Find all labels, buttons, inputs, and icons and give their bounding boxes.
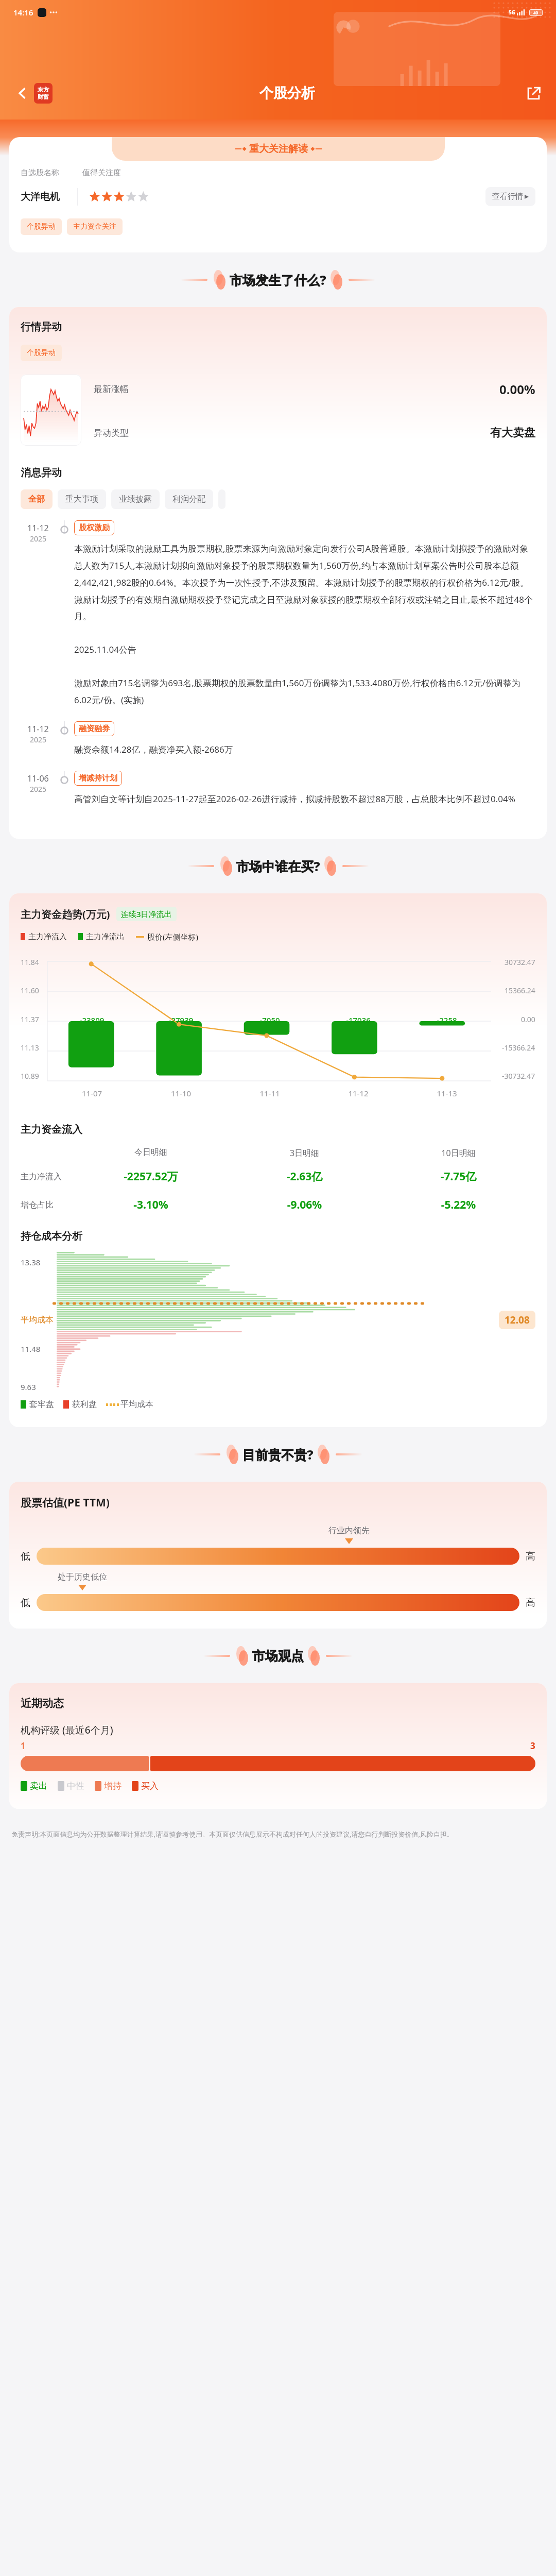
- staticText: 高管刘自文等计划自2025-11-27起至2026-02-26进行减持，拟减持股…: [74, 793, 515, 805]
- staticText: 获利盘: [72, 1399, 97, 1410]
- staticText: 市场发生了什么?: [230, 271, 326, 289]
- staticText: -2257.52万: [74, 1169, 228, 1184]
- staticText: 11-13: [403, 1088, 491, 1098]
- staticText: -7.75亿: [381, 1169, 535, 1184]
- staticText: 个股分析: [259, 84, 315, 102]
- staticText: 平均成本: [21, 1315, 54, 1325]
- staticText: 增仓占比: [21, 1200, 74, 1210]
- staticText: 平均成本: [120, 1399, 153, 1410]
- staticText: 东方: [38, 86, 49, 93]
- staticText: 重大事项: [65, 494, 98, 504]
- staticText: 大洋电机: [21, 191, 77, 203]
- staticText: 5G: [509, 9, 515, 16]
- staticText: 3: [530, 1740, 535, 1752]
- staticText: 11-07: [47, 1088, 136, 1098]
- staticText: -23809: [47, 1015, 136, 1025]
- staticText: -5.22%: [381, 1197, 535, 1212]
- staticText: 股权激励: [79, 523, 110, 533]
- button[interactable]: 个股异动: [21, 345, 62, 361]
- staticText: -2258: [403, 1015, 491, 1025]
- staticText: 30732.47: [505, 957, 535, 967]
- button[interactable]: 主力资金关注: [67, 218, 123, 235]
- button[interactable]: Back: [10, 81, 34, 105]
- staticText: 连续3日净流出: [121, 909, 172, 919]
- staticText: 主力资金流入: [21, 1123, 82, 1136]
- staticText: 40: [533, 10, 538, 15]
- staticText: 11.37: [21, 1014, 39, 1024]
- staticText: 重大关注解读: [249, 143, 308, 155]
- staticText: 13.38: [21, 1257, 41, 1267]
- staticText: 近期动态: [21, 1697, 64, 1710]
- staticText: 14:16: [13, 7, 33, 18]
- staticText: 11.84: [21, 957, 39, 967]
- staticText: 套牢盘: [29, 1399, 54, 1410]
- staticText: 融资余额14.28亿，融资净买入额-2686万: [74, 743, 233, 755]
- staticText: 处于历史低位: [58, 1572, 107, 1582]
- button[interactable]: 查看行情: [485, 187, 535, 206]
- staticText: 持仓成本分析: [21, 1230, 82, 1243]
- staticText: -30732.47: [502, 1071, 535, 1081]
- staticText: 增持: [104, 1781, 121, 1791]
- staticText: 自选股名称: [21, 168, 82, 178]
- staticText: 免责声明:本页面信息均为公开数据整理计算结果,请谨慎参考使用。本页面仅供信息展示…: [11, 1829, 454, 1839]
- staticText: -15366.24: [502, 1043, 535, 1053]
- staticText: 2025: [30, 534, 47, 544]
- staticText: -27939: [136, 1015, 225, 1025]
- staticText: 卖出: [30, 1781, 47, 1791]
- staticText: 主力净流出: [86, 932, 125, 942]
- staticText: 行情异动: [21, 320, 62, 333]
- staticText: 低: [21, 1550, 30, 1563]
- staticText: 业绩披露: [119, 494, 152, 504]
- staticText: 增减持计划: [79, 773, 117, 783]
- staticText: 值得关注度: [82, 168, 121, 178]
- staticText: 目前贵不贵?: [242, 1446, 314, 1463]
- staticText: -9.06%: [228, 1197, 381, 1212]
- staticText: 股价(左侧坐标): [147, 931, 199, 942]
- staticText: 主力净流入: [28, 932, 67, 942]
- staticText: 0.00%: [499, 381, 535, 398]
- button[interactable]: 重大事项: [58, 489, 106, 509]
- staticText: 主力资金关注: [73, 222, 116, 231]
- staticText: -2.63亿: [228, 1169, 381, 1184]
- staticText: 2025: [30, 735, 47, 744]
- button[interactable]: 利润分配: [165, 489, 213, 509]
- button[interactable]: 业绩披露: [111, 489, 160, 509]
- button[interactable]: 股权激励: [74, 520, 114, 535]
- staticText: 最新涨幅: [94, 384, 129, 395]
- staticText: 10.89: [21, 1071, 39, 1081]
- button[interactable]: Share: [522, 81, 546, 105]
- staticText: 低: [21, 1597, 30, 1609]
- staticText: 3日明细: [228, 1147, 381, 1159]
- staticText: 11.48: [21, 1344, 41, 1354]
- staticText: 15366.24: [505, 986, 535, 995]
- staticText: 0.00: [521, 1014, 535, 1024]
- staticText: 9.63: [21, 1382, 36, 1392]
- button[interactable]: 个股异动: [21, 218, 62, 235]
- staticText: 消息异动: [21, 466, 62, 479]
- staticText: 买入: [141, 1781, 159, 1791]
- button[interactable]: 全部: [21, 489, 53, 509]
- staticText: 10日明细: [381, 1147, 535, 1159]
- staticText: 11-11: [225, 1088, 314, 1098]
- staticText: 市场中谁在买?: [236, 857, 320, 875]
- staticText: 个股异动: [27, 222, 56, 231]
- staticText: 11-12: [314, 1088, 403, 1098]
- staticText: 全部: [28, 494, 45, 504]
- staticText: 本激励计划采取的激励工具为股票期权,股票来源为向激励对象定向发行公司A股普通股。…: [74, 543, 535, 706]
- button[interactable]: 融资融券: [74, 721, 114, 736]
- staticText: 11.13: [21, 1043, 39, 1053]
- staticText: 11-12: [27, 522, 49, 534]
- staticText: 1: [21, 1740, 26, 1752]
- staticText: 机构评级 (最近6个月): [21, 1723, 113, 1737]
- staticText: 股票估值(PE TTM): [21, 1495, 110, 1510]
- staticText: 个股异动: [27, 348, 56, 358]
- staticText: 查看行情: [492, 192, 523, 201]
- staticText: 主力资金趋势(万元): [21, 907, 110, 921]
- staticText: 融资融券: [79, 724, 110, 734]
- staticText: 11-06: [27, 773, 49, 784]
- staticText: 有大卖盘: [490, 426, 535, 440]
- staticText: 11-12: [27, 723, 49, 735]
- staticText: 11-10: [136, 1088, 225, 1098]
- button[interactable]: 增减持计划: [74, 771, 122, 786]
- staticText: 中性: [67, 1781, 84, 1791]
